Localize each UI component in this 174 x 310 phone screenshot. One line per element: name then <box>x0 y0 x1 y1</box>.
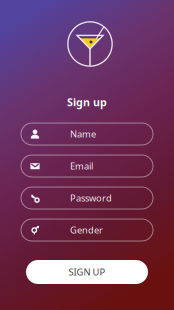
staticText: Sign up <box>67 95 107 109</box>
button[interactable]: SIGN UP <box>26 260 148 284</box>
button[interactable]: Email <box>21 155 153 177</box>
staticText: SIGN UP <box>68 266 105 278</box>
button[interactable]: Gender <box>21 219 153 241</box>
button[interactable]: Password <box>21 187 153 209</box>
staticText: Name <box>70 128 96 140</box>
staticText: Gender <box>70 224 103 236</box>
button[interactable]: Name <box>21 123 153 145</box>
staticText: Password <box>70 192 112 204</box>
staticText: Email <box>70 160 93 172</box>
